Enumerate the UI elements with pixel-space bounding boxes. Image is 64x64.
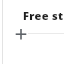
staticText: Free st: [23, 8, 64, 23]
button[interactable]: Add: [14, 28, 27, 41]
